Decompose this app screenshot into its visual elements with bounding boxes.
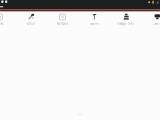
staticText: System [90,22,98,25]
staticText: Camera [153,22,160,25]
staticText: My Styles [57,22,68,25]
staticText: Editor [27,22,35,25]
button[interactable]: My Styles [47,13,78,25]
staticText: Package Info [117,22,134,25]
button[interactable]: System [78,13,110,25]
button[interactable]: Camera [141,13,160,25]
button[interactable]: Looks [0,13,15,25]
button[interactable]: Package Info [110,13,141,25]
staticText: Looks [0,22,3,25]
button[interactable]: Editor [15,13,47,25]
